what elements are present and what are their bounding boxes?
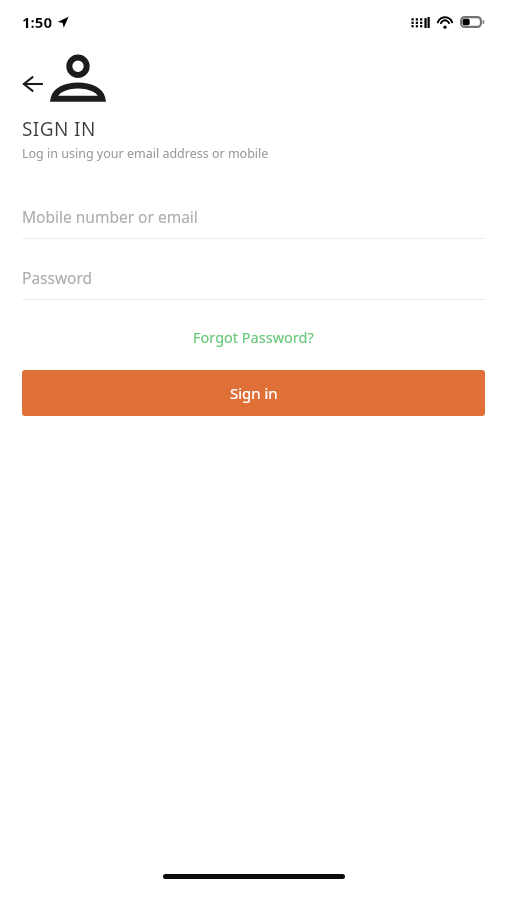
- button[interactable]: Sign in: [22, 370, 485, 416]
- staticText: SIGN IN: [22, 116, 96, 142]
- staticText: Password: [22, 267, 93, 288]
- button[interactable]: Mobile number or email: [22, 200, 485, 232]
- staticText: Log in using your email address or mobil…: [22, 145, 269, 162]
- staticText: Forgot Password?: [193, 327, 314, 347]
- button[interactable]: Back: [16, 64, 50, 104]
- other: Profile: [50, 52, 106, 104]
- staticText: 1:50: [22, 12, 52, 32]
- button[interactable]: Password: [22, 261, 485, 293]
- button[interactable]: Forgot Password?: [183, 322, 324, 352]
- staticText: Mobile number or email: [22, 206, 198, 227]
- staticText: Sign in: [230, 383, 278, 403]
